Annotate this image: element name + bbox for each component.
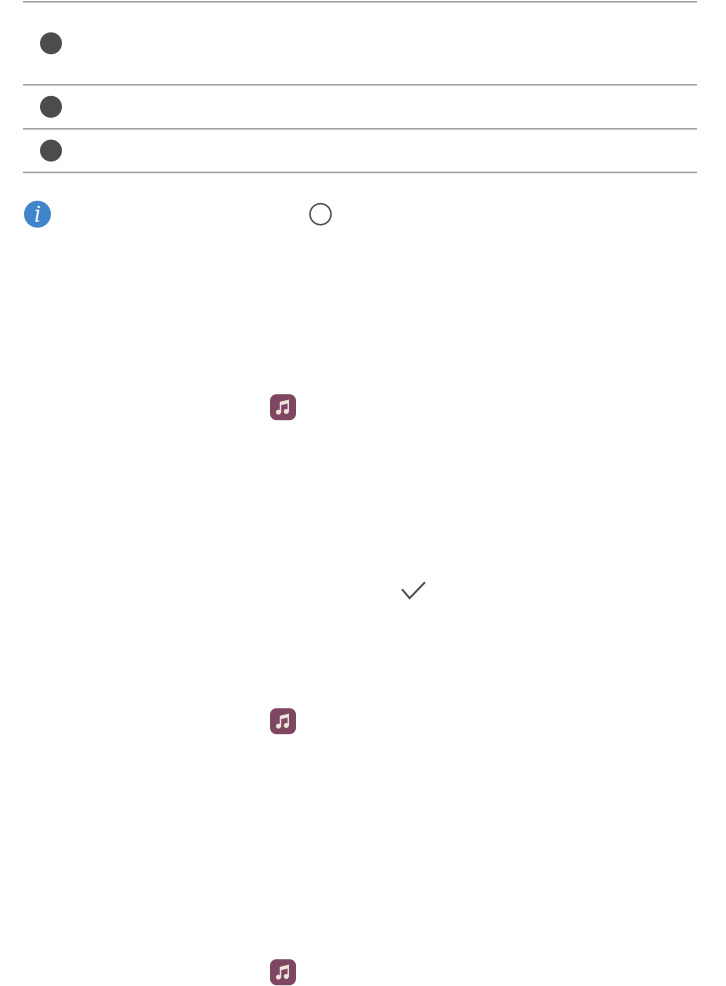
staticText: i <box>34 202 41 227</box>
button[interactable]: Downloads stay available offline. <box>0 86 726 128</box>
button[interactable]: Select <box>51 204 331 225</box>
button[interactable]: Lossless and Spatial Audio are included … <box>0 3 726 84</box>
button[interactable]: About this library <box>0 201 51 228</box>
button[interactable]: Sync your library across devices. <box>0 130 726 172</box>
